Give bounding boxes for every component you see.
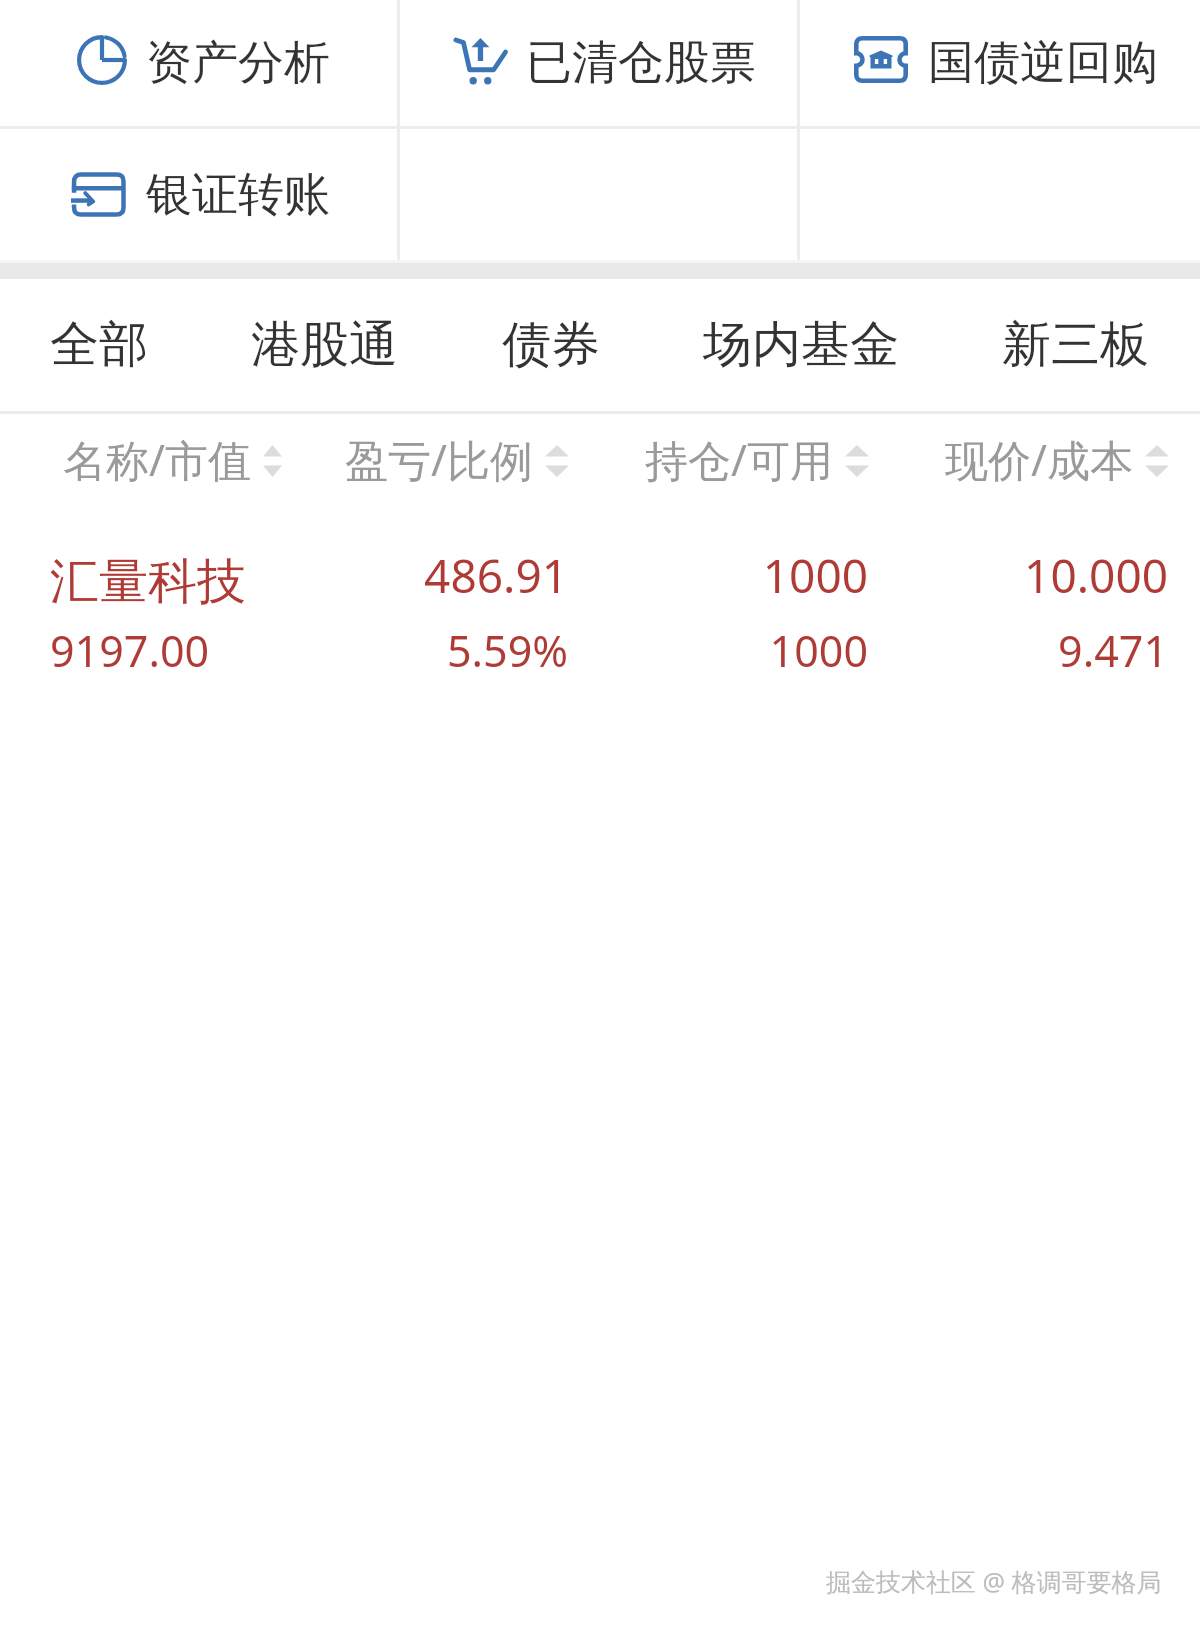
button[interactable]: 持仓/可用 [582, 414, 882, 504]
staticText: 全部 [50, 314, 148, 376]
staticText: 名称/市值 [63, 430, 251, 489]
staticText: 9.471 [1058, 621, 1168, 680]
staticText: 新三板 [1002, 314, 1149, 376]
staticText: 5.59% [446, 621, 568, 680]
staticText: 港股通 [251, 314, 398, 376]
staticText: 10.000 [1024, 544, 1168, 607]
staticText: 国债逆回购 [928, 34, 1158, 92]
staticText: 9197.00 [50, 621, 210, 680]
staticText: 持仓/可用 [645, 430, 833, 489]
staticText: 掘金技术社区 @ 格调哥要格局 [826, 1564, 1162, 1598]
button[interactable]: 港股通 [251, 279, 398, 411]
staticText: 1000 [769, 621, 868, 680]
button[interactable]: 银证转账 [0, 129, 397, 260]
staticText: 债券 [502, 314, 600, 376]
button[interactable]: 资产分析 [0, 0, 397, 126]
staticText: 场内基金 [703, 314, 899, 376]
button[interactable]: 名称/市值 [0, 414, 282, 504]
button[interactable]: 场内基金 [703, 279, 899, 411]
staticText: 资产分析 [146, 34, 330, 92]
button[interactable]: 全部 [50, 279, 148, 411]
staticText: 盈亏/比例 [345, 430, 533, 489]
button[interactable]: 盈亏/比例 [282, 414, 582, 504]
button[interactable]: 债券 [502, 279, 600, 411]
button[interactable]: 国债逆回购 [800, 0, 1197, 126]
staticText: 现价/成本 [945, 430, 1133, 489]
staticText: 已清仓股票 [526, 34, 756, 92]
staticText: 汇量科技 [50, 551, 246, 613]
staticText: 银证转账 [146, 166, 330, 224]
button[interactable]: 已清仓股票 [400, 0, 797, 126]
staticText: 1000 [762, 544, 868, 607]
staticText: 486.91 [424, 544, 568, 607]
button[interactable]: 汇量科技 [0, 504, 1200, 704]
button[interactable]: 现价/成本 [882, 414, 1172, 504]
button[interactable]: 新三板 [1002, 279, 1149, 411]
